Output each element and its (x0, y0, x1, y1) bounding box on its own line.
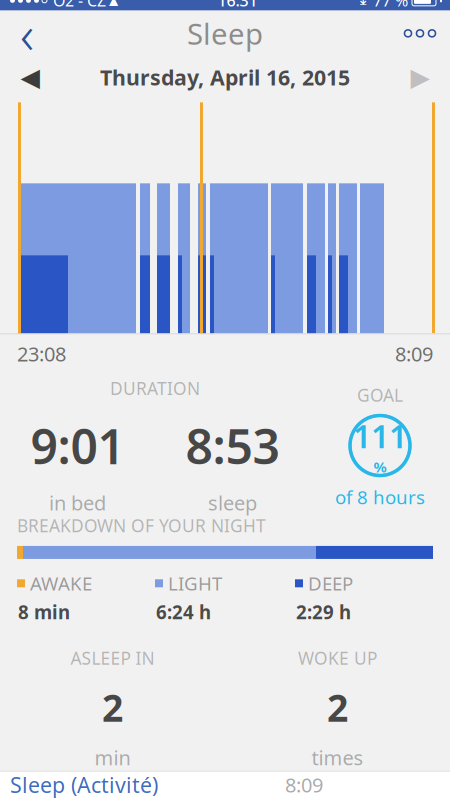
staticText: 9:01 (30, 414, 124, 477)
staticText: Sleep (Activité) (10, 770, 158, 799)
button[interactable]: Back (0, 11, 54, 55)
staticText: ▲ (109, 0, 118, 7)
staticText: of 8 hours (335, 484, 425, 509)
staticText: BREAKDOWN OF YOUR NIGHT (17, 514, 266, 537)
staticText: min (94, 744, 130, 771)
button[interactable]: Sleep Activité detail (0, 771, 450, 800)
button[interactable]: Next day (390, 57, 450, 97)
button[interactable]: Previous day (0, 57, 60, 97)
staticText: O2 - CZ (53, 0, 106, 11)
staticText: LIGHT (168, 571, 222, 596)
staticText: % (373, 457, 386, 476)
staticText: ▶ (410, 63, 429, 92)
staticText: ‹ (20, 0, 34, 69)
staticText: 16:31 (217, 0, 257, 11)
staticText: Thursday, April 16, 2015 (100, 63, 350, 91)
staticText: times (311, 744, 363, 771)
staticText: 2 (102, 682, 123, 732)
staticText: DURATION (110, 377, 200, 400)
staticText: ASLEEP IN (70, 646, 154, 669)
staticText: sleep (208, 489, 257, 516)
staticText: 6:24 h (156, 600, 211, 624)
staticText: 111 (353, 414, 407, 457)
staticText: ◀ (20, 63, 39, 92)
staticText: AWAKE (30, 571, 92, 596)
staticText: GOAL (357, 383, 403, 406)
staticText: Sleep (187, 14, 263, 53)
staticText: in bed (49, 489, 106, 516)
staticText: 8:09 (395, 340, 433, 367)
staticText: 8:53 (185, 414, 279, 477)
staticText: 77 % (373, 0, 408, 11)
staticText: 23:08 (17, 340, 66, 367)
staticText: 2 (327, 682, 348, 732)
staticText: DEEP (308, 571, 353, 596)
staticText: 8:09 (285, 771, 323, 798)
staticText: 2:29 h (296, 600, 351, 624)
staticText: WOKE UP (298, 646, 377, 669)
staticText: 8 min (18, 600, 70, 624)
button[interactable]: More options (390, 11, 450, 55)
staticText: ↨ (357, 0, 369, 9)
